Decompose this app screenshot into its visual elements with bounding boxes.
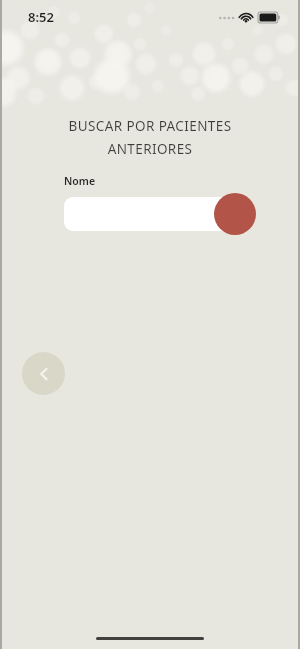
button[interactable] bbox=[64, 197, 238, 231]
staticText: BUSCAR POR PACIENTES ANTERIORES bbox=[24, 117, 276, 158]
staticText: 8:52 bbox=[28, 8, 54, 26]
button[interactable]: Voltar bbox=[22, 352, 65, 395]
staticText: Nome bbox=[64, 174, 96, 188]
button[interactable]: Buscar bbox=[214, 193, 256, 235]
